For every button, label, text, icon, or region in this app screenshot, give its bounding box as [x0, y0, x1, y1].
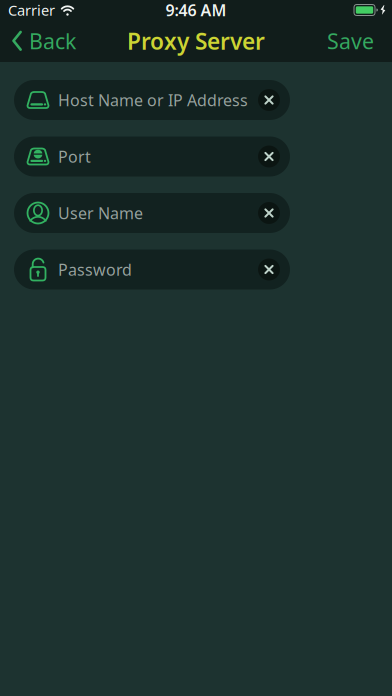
button[interactable]: Save	[327, 27, 392, 55]
staticText: Carrier	[8, 0, 55, 20]
staticText: User Name	[58, 202, 143, 224]
button[interactable]: Back	[0, 27, 76, 55]
staticText: Host Name or IP Address	[58, 89, 248, 111]
staticText: Port	[58, 146, 91, 167]
staticText: Back	[29, 27, 76, 55]
button[interactable]: Password	[14, 249, 290, 289]
staticText: Proxy Server	[127, 26, 265, 56]
staticText: 9:46 AM	[165, 0, 226, 21]
button[interactable]: User Name	[14, 193, 290, 233]
button[interactable]: Host Name or IP Address	[14, 80, 290, 120]
button[interactable]: Clear text	[258, 89, 280, 111]
button[interactable]: Port	[14, 136, 290, 176]
staticText: Save	[327, 27, 374, 55]
staticText: Password	[58, 259, 132, 280]
button[interactable]: Clear text	[258, 202, 280, 224]
button[interactable]: Clear text	[258, 145, 280, 167]
button[interactable]: Clear text	[258, 258, 280, 280]
